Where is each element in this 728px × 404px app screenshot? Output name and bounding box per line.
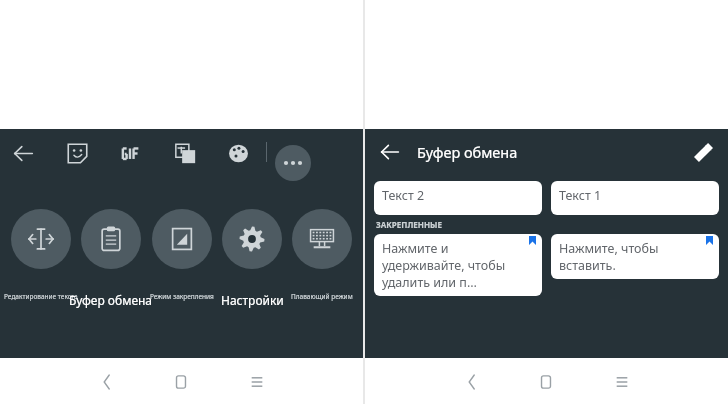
button[interactable]: Back: [371, 133, 409, 171]
staticText: Редактирование текста: [4, 292, 78, 301]
button[interactable]: Текст 2: [374, 181, 542, 215]
button[interactable]: Themes: [219, 134, 257, 172]
staticText: Буфер обмена: [69, 292, 153, 308]
button[interactable]: Recents: [235, 360, 279, 404]
button[interactable]: Нажмите, чтобы вставить.: [551, 234, 719, 279]
staticText: Настройки: [221, 292, 284, 308]
button[interactable]: Back: [450, 360, 494, 404]
button[interactable]: Режим закрепления: [148, 209, 216, 269]
button[interactable]: Текст 1: [551, 181, 719, 215]
button[interactable]: Stickers: [58, 134, 96, 172]
button[interactable]: Translate: [166, 134, 204, 172]
button[interactable]: Home: [159, 360, 203, 404]
staticText: Текст 1: [559, 187, 602, 204]
button[interactable]: Настройки: [218, 209, 286, 269]
staticText: Нажмите, чтобы вставить.: [559, 240, 709, 274]
button[interactable]: Home: [524, 360, 568, 404]
button[interactable]: Редактирование текста: [7, 209, 75, 269]
button[interactable]: GIF: [113, 134, 151, 172]
staticText: Текст 2: [382, 187, 425, 204]
button[interactable]: Буфер обмена: [77, 209, 145, 269]
button[interactable]: Back: [85, 360, 129, 404]
staticText: ЗАКРЕПЛЕННЫЕ: [376, 219, 442, 230]
button[interactable]: Recents: [600, 360, 644, 404]
staticText: Буфер обмена: [417, 142, 518, 162]
staticText: Плавающий режим: [291, 292, 353, 301]
staticText: Режим закрепления: [150, 292, 214, 301]
button[interactable]: Нажмите и удерживайте, чтобы удалить или…: [374, 234, 542, 296]
button[interactable]: Back: [4, 134, 42, 172]
button[interactable]: Edit: [684, 133, 722, 171]
button[interactable]: Плавающий режим: [288, 209, 356, 269]
staticText: Нажмите и удерживайте, чтобы удалить или…: [382, 240, 532, 291]
button[interactable]: More options: [275, 145, 311, 181]
